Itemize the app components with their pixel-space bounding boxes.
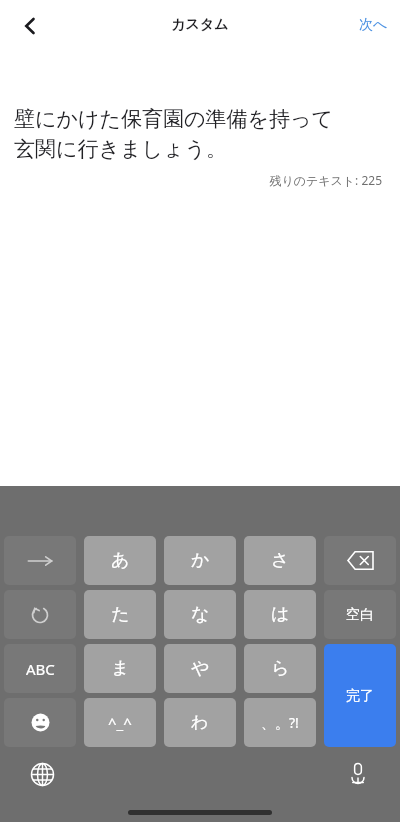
button[interactable]: 空白 xyxy=(324,590,396,639)
button[interactable]: は xyxy=(244,590,316,639)
button[interactable]: あ xyxy=(84,536,156,585)
button[interactable]: 次へ xyxy=(353,8,394,42)
button[interactable]: Move cursor right xyxy=(4,536,76,585)
staticText: な xyxy=(191,603,210,626)
button[interactable]: Voice input xyxy=(336,754,380,794)
staticText: 完了 xyxy=(346,687,374,705)
staticText: は xyxy=(271,603,290,626)
button[interactable]: さ xyxy=(244,536,316,585)
button[interactable]: Change keyboard language xyxy=(20,754,64,794)
staticText: さ xyxy=(271,549,290,572)
staticText: ABC xyxy=(26,659,55,679)
staticText: ま xyxy=(111,657,130,680)
button[interactable]: や xyxy=(164,644,236,693)
button[interactable]: Delete xyxy=(324,536,396,585)
staticText: か xyxy=(191,549,210,572)
staticText: 、。?! xyxy=(261,713,299,732)
staticText: ら xyxy=(271,657,290,680)
staticText: 空白 xyxy=(346,606,374,624)
staticText: わ xyxy=(191,712,209,733)
button[interactable]: ら xyxy=(244,644,316,693)
staticText: あ xyxy=(111,549,130,572)
staticText: 残りのテキスト: 225 xyxy=(14,172,382,188)
button[interactable]: わ xyxy=(164,698,236,747)
button[interactable]: Emoji xyxy=(4,698,76,747)
button[interactable]: ABC xyxy=(4,644,76,693)
button[interactable]: な xyxy=(164,590,236,639)
button[interactable]: 完了 xyxy=(324,644,396,747)
staticText: や xyxy=(191,657,210,680)
button[interactable]: ま xyxy=(84,644,156,693)
staticText: 壁にかけた保育園の準備を持って 玄関に行きましょう。 xyxy=(14,106,333,163)
button[interactable]: か xyxy=(164,536,236,585)
button[interactable]: た xyxy=(84,590,156,639)
staticText: ^_^ xyxy=(108,713,132,733)
button[interactable]: Back xyxy=(8,6,52,46)
staticText: た xyxy=(111,603,130,626)
button[interactable]: 、。?! xyxy=(244,698,316,747)
button[interactable]: Undo xyxy=(4,590,76,639)
staticText: カスタム xyxy=(171,16,229,34)
button[interactable]: ^_^ xyxy=(84,698,156,747)
staticText: 次へ xyxy=(359,16,388,34)
